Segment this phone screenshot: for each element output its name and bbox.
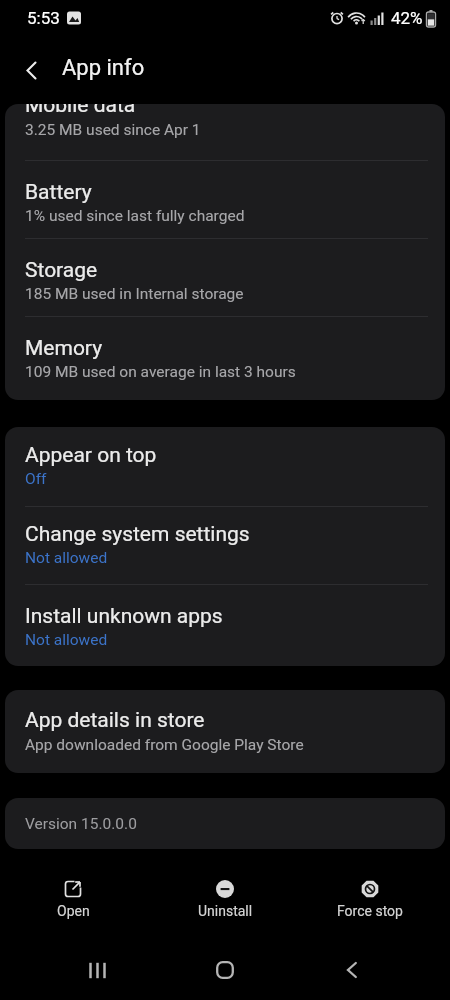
button[interactable]: Open (13, 880, 133, 919)
staticText: 3.25 MB used since Apr 1 (25, 121, 201, 139)
button[interactable]: Battery (5, 161, 445, 238)
staticText: App downloaded from Google Play Store (25, 736, 304, 754)
button[interactable] (13, 52, 51, 90)
button[interactable]: Memory (5, 317, 445, 400)
button[interactable] (330, 948, 374, 992)
button[interactable]: Storage (5, 239, 445, 316)
staticText: 185 MB used in Internal storage (25, 285, 244, 303)
staticText: App info (62, 55, 145, 81)
staticText: App details in store (25, 708, 205, 733)
staticText: 109 MB used on average in last 3 hours (25, 363, 296, 381)
button[interactable]: Version 15.0.0.0 (5, 798, 445, 849)
staticText: 1% used since last fully charged (25, 207, 245, 225)
staticText: Not allowed (25, 631, 108, 649)
staticText: Battery (25, 180, 92, 205)
button[interactable] (76, 948, 120, 992)
staticText: Version 15.0.0.0 (25, 815, 137, 833)
button[interactable]: App details in store (5, 690, 445, 773)
button[interactable]: Mobile data (5, 104, 445, 160)
staticText: Storage (25, 258, 98, 283)
staticText: Off (25, 470, 47, 488)
staticText: 42% (391, 8, 423, 28)
button[interactable] (203, 948, 247, 992)
staticText: Uninstall (198, 903, 253, 919)
staticText: Appear on top (25, 443, 157, 468)
staticText: Not allowed (25, 549, 108, 567)
button[interactable]: Force stop (310, 880, 430, 919)
button[interactable]: Install unknown apps (5, 585, 445, 666)
staticText: Mobile data (25, 104, 136, 118)
staticText: Install unknown apps (25, 604, 223, 629)
staticText: Change system settings (25, 522, 250, 547)
button[interactable]: Appear on top (5, 427, 445, 506)
staticText: Force stop (337, 903, 403, 919)
staticText: 5:53 (27, 8, 60, 28)
button[interactable]: Uninstall (165, 880, 285, 919)
button[interactable]: Change system settings (5, 507, 445, 584)
staticText: Memory (25, 336, 103, 361)
staticText: Open (57, 903, 90, 919)
